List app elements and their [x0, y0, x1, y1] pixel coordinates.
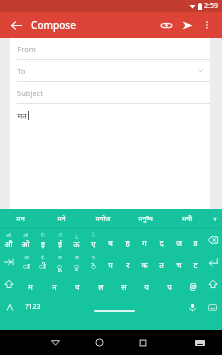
staticText: ी	[58, 232, 62, 238]
staticText: इ	[41, 238, 45, 249]
button[interactable]: Shift	[204, 273, 222, 295]
button[interactable]: Emoji	[202, 295, 222, 319]
button[interactable]: Delete	[204, 229, 222, 251]
staticText: ई	[58, 238, 62, 249]
button[interactable]: ि	[34, 229, 51, 251]
button[interactable]: From	[17, 38, 204, 59]
staticText: मनोज	[95, 214, 111, 224]
button[interactable]: Navigate up	[7, 16, 25, 34]
button[interactable]: Shift	[0, 273, 18, 295]
button[interactable]: To	[17, 60, 204, 81]
button[interactable]: मने	[41, 209, 82, 228]
button[interactable]: ट	[187, 251, 204, 273]
button[interactable]: म	[18, 273, 42, 295]
button[interactable]: र	[119, 251, 136, 273]
button[interactable]: More suggestions	[208, 209, 222, 228]
button[interactable]: Tab	[0, 251, 18, 273]
button[interactable]: Home	[77, 330, 121, 355]
staticText: े	[92, 232, 95, 238]
staticText: प	[167, 281, 172, 292]
staticText: ब	[108, 237, 113, 248]
button[interactable]: ए	[85, 251, 102, 273]
button[interactable]: ई	[34, 251, 51, 273]
button[interactable]: ब	[102, 229, 119, 251]
button[interactable]: ऊ	[51, 251, 68, 273]
staticText: To	[17, 66, 26, 76]
button[interactable]: Subject	[17, 82, 204, 103]
staticText: म	[28, 281, 33, 292]
button[interactable]: ल	[89, 273, 112, 295]
button[interactable]: Switch keyboard	[181, 330, 219, 355]
staticText: From	[17, 44, 36, 54]
staticText: व	[75, 281, 80, 292]
staticText: ?123	[25, 302, 41, 312]
button[interactable]: ज	[170, 229, 187, 251]
button[interactable]: व	[66, 273, 89, 295]
staticText: ि	[41, 232, 45, 238]
staticText: Compose	[31, 18, 76, 32]
staticText: ओ	[23, 232, 28, 238]
button[interactable]: य	[135, 273, 158, 295]
staticText: ए	[91, 238, 96, 249]
staticText: ऋ	[75, 254, 79, 260]
button[interactable]: च	[170, 251, 187, 273]
button[interactable]: Back	[33, 330, 77, 355]
button[interactable]: मनुष्य	[124, 209, 166, 228]
staticText: ू	[75, 232, 78, 238]
staticText: ी	[39, 260, 46, 271]
button[interactable]: मनोज	[82, 209, 124, 228]
button[interactable]: ग	[136, 229, 153, 251]
staticText: र	[126, 259, 130, 270]
staticText: ू	[57, 260, 62, 271]
button[interactable]: Recent apps	[121, 330, 165, 355]
staticText: औ	[6, 232, 11, 238]
button[interactable]: े	[85, 229, 102, 251]
staticText: मन	[16, 214, 25, 224]
staticText: मन	[17, 110, 27, 121]
button[interactable]: ड	[187, 229, 204, 251]
button[interactable]: Voice input	[182, 295, 202, 319]
staticText: द	[159, 237, 164, 248]
button[interactable]: औ	[0, 229, 17, 251]
staticText: 2:59	[204, 1, 218, 11]
staticText: स	[121, 281, 127, 292]
button[interactable]: प	[102, 251, 119, 273]
button[interactable]: न	[42, 273, 66, 295]
staticText: ▾	[213, 215, 217, 222]
button[interactable]: मन	[0, 209, 41, 228]
staticText: ऊ	[58, 254, 62, 260]
button[interactable]: Change keyboard	[0, 295, 20, 319]
button[interactable]: Enter	[204, 251, 222, 273]
button[interactable]: Attach	[157, 16, 175, 34]
staticText: मने	[57, 214, 66, 224]
button[interactable]: क	[136, 251, 153, 273]
button[interactable]: Send	[178, 16, 196, 34]
button[interactable]: ह	[119, 229, 136, 251]
staticText: ा	[23, 260, 30, 271]
staticText: ड	[193, 237, 198, 248]
button[interactable]: Space	[56, 302, 172, 312]
button[interactable]: ओ	[17, 229, 34, 251]
staticText: ऊ	[73, 238, 80, 249]
button[interactable]: @	[181, 273, 204, 295]
button[interactable]: प	[158, 273, 181, 295]
staticText: मनी	[182, 214, 192, 224]
staticText: ट	[193, 259, 198, 270]
staticText: प	[108, 259, 113, 270]
button[interactable]: त	[153, 251, 170, 273]
staticText: Subject	[17, 88, 43, 98]
button[interactable]: द	[153, 229, 170, 251]
staticText: आ	[24, 254, 29, 260]
button[interactable]: आ	[18, 251, 34, 273]
staticText: ल	[98, 281, 104, 292]
button[interactable]: मनी	[166, 209, 208, 228]
button[interactable]: ?123	[20, 295, 46, 319]
staticText: ृ	[74, 260, 79, 271]
staticText: औ	[4, 238, 13, 249]
button[interactable]: ऋ	[68, 251, 85, 273]
staticText: मनुष्य	[138, 214, 153, 224]
button[interactable]: More options	[199, 17, 215, 33]
button[interactable]: ी	[51, 229, 68, 251]
button[interactable]: ू	[68, 229, 85, 251]
button[interactable]: स	[112, 273, 135, 295]
